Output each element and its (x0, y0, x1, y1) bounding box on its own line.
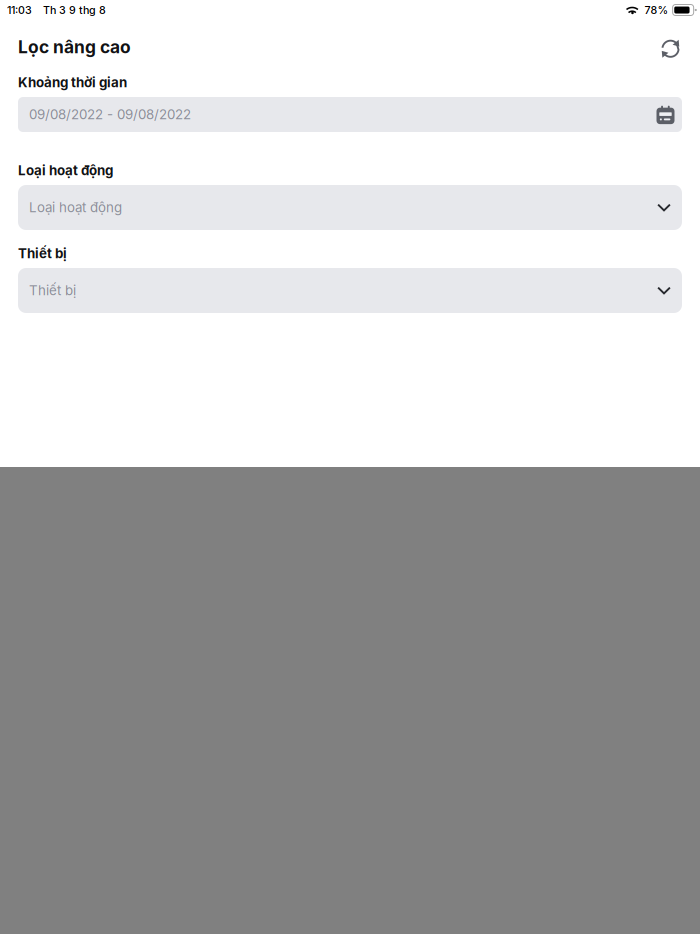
staticText: Thiết bị (18, 245, 67, 261)
staticText: Loại hoạt động (29, 199, 122, 215)
staticText: 78% (644, 3, 668, 16)
staticText: Lọc nâng cao (18, 36, 131, 57)
staticText: 11:03 (7, 3, 32, 16)
staticText: Th 3 9 thg 8 (43, 3, 106, 16)
button[interactable]: Thiết bị (18, 268, 682, 313)
button[interactable]: Loại hoạt động (18, 185, 682, 230)
button[interactable]: 09/08/2022 - 09/08/2022 (18, 97, 682, 132)
staticText: 09/08/2022 - 09/08/2022 (29, 106, 191, 122)
staticText: Thiết bị (29, 282, 76, 298)
staticText: Loại hoạt động (18, 162, 113, 178)
button[interactable]: Refresh (652, 30, 686, 64)
staticText: Khoảng thời gian (18, 74, 127, 90)
